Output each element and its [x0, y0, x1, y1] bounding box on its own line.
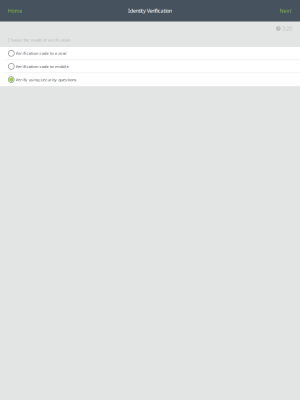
staticText: Verification code to mobile	[16, 64, 68, 69]
button[interactable]: Verify using security questions	[0, 73, 300, 86]
staticText: Next	[279, 7, 291, 14]
staticText: 3:20	[282, 25, 292, 32]
staticText: Choose the mode of verification	[8, 37, 70, 43]
staticText: Home	[8, 7, 22, 14]
button[interactable]: Home	[0, 3, 26, 19]
staticText: Verification code to e-mail	[16, 51, 67, 56]
button[interactable]: Verification code to e-mail	[0, 47, 300, 60]
button[interactable]: Next	[275, 3, 300, 19]
staticText: Identity Verification	[128, 7, 172, 14]
button[interactable]: Verification code to mobile	[0, 60, 300, 73]
staticText: Verify using security questions	[16, 77, 77, 82]
